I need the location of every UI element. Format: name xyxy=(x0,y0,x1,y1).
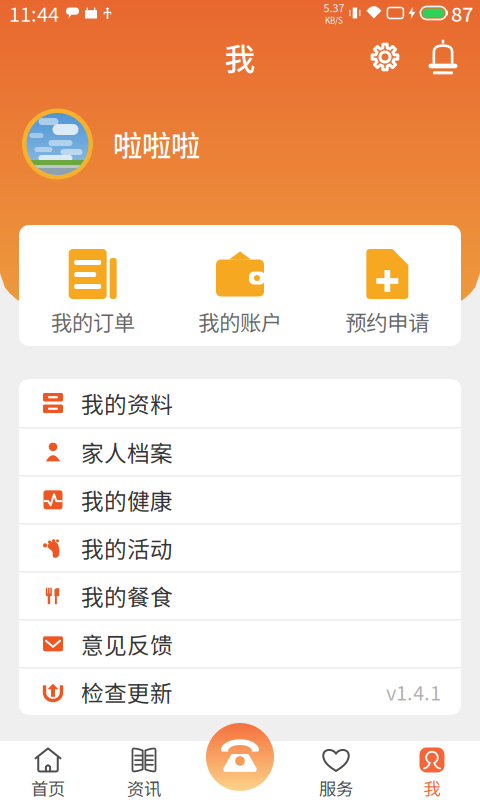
staticText: 我的账户 xyxy=(198,306,282,337)
staticText: 首页 xyxy=(31,775,65,800)
button[interactable]: 我的健康 xyxy=(19,475,461,523)
staticText: 87 xyxy=(451,0,473,27)
button[interactable]: 我的活动 xyxy=(19,523,461,571)
staticText: 我的活动 xyxy=(81,531,173,564)
button[interactable]: Notifications xyxy=(420,34,466,80)
button[interactable]: 检查更新 xyxy=(19,667,461,715)
button[interactable]: 资讯 xyxy=(96,741,192,800)
button[interactable]: 我的资料 xyxy=(19,379,461,427)
staticText: 我的资料 xyxy=(81,387,173,419)
button[interactable]: Call xyxy=(206,723,274,791)
staticText: 我的订单 xyxy=(51,306,135,337)
button[interactable]: 我 xyxy=(384,741,480,800)
button[interactable]: 我的餐食 xyxy=(19,571,461,619)
button[interactable]: 预约申请 xyxy=(314,225,461,346)
button[interactable]: 首页 xyxy=(0,741,96,800)
staticText: 检查更新 xyxy=(81,675,173,708)
staticText: 11:44 xyxy=(9,0,59,27)
button[interactable]: Profile photo xyxy=(22,108,93,179)
staticText: 意见反馈 xyxy=(81,627,173,660)
staticText: 我 xyxy=(423,775,440,800)
button[interactable]: 我的订单 xyxy=(19,225,166,346)
staticText: 我的健康 xyxy=(81,483,173,516)
staticText: 啦啦啦 xyxy=(113,123,200,165)
staticText: 5.37 xyxy=(323,0,344,15)
staticText: 我 xyxy=(224,35,255,79)
staticText: 我的餐食 xyxy=(81,579,173,612)
button[interactable]: 意见反馈 xyxy=(19,619,461,667)
button[interactable]: 我的账户 xyxy=(166,225,314,346)
staticText: v1.4.1 xyxy=(386,677,441,706)
staticText: 家人档案 xyxy=(81,435,173,468)
button[interactable]: Settings xyxy=(362,34,408,80)
staticText: 资讯 xyxy=(127,775,161,800)
button[interactable]: 服务 xyxy=(288,741,384,800)
button[interactable]: 家人档案 xyxy=(19,427,461,475)
staticText: 服务 xyxy=(319,775,353,800)
staticText: 预约申请 xyxy=(345,306,429,337)
staticText: KB/S xyxy=(325,14,343,26)
